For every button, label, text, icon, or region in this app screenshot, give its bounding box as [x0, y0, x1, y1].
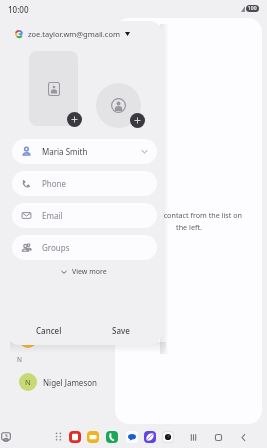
button[interactable]: App [144, 431, 156, 443]
staticText: 10:00 [8, 4, 29, 15]
button[interactable]: Groups [12, 235, 157, 260]
button[interactable]: App [87, 431, 99, 443]
button[interactable]: Back [236, 430, 250, 444]
staticText: Email [42, 210, 63, 221]
button[interactable]: N [4, 368, 114, 396]
staticText: Nigel Jameson [43, 377, 97, 388]
button[interactable]: Email [12, 203, 157, 228]
button[interactable]: Add photo [67, 112, 82, 127]
button[interactable]: Phone [12, 171, 157, 196]
staticText: 100 [248, 5, 257, 12]
button[interactable]: Add photo [29, 51, 78, 126]
staticText: Groups [42, 242, 70, 253]
staticText: Save [112, 325, 130, 336]
staticText: Cancel [36, 325, 62, 336]
staticText: zoe.taylor.wm@gmail.com [28, 29, 120, 39]
button[interactable]: App [162, 431, 174, 443]
button[interactable]: Choose icon [96, 83, 141, 128]
staticText: N [25, 377, 31, 387]
staticText: Select a contact from the list on the le… [130, 210, 248, 232]
staticText: Phone [42, 178, 67, 189]
staticText: View more [72, 267, 107, 277]
button[interactable]: Screenshot [1, 432, 11, 442]
button[interactable]: zoe.taylor.wm@gmail.com [15, 25, 130, 43]
button[interactable]: Recent apps [186, 430, 200, 444]
button[interactable]: Home [211, 430, 225, 444]
button[interactable]: View more [60, 265, 107, 279]
staticText: N [17, 355, 22, 364]
button[interactable]: App [106, 431, 118, 443]
button[interactable]: Save [100, 319, 142, 341]
button[interactable]: Maria Smith [12, 139, 157, 164]
button[interactable]: App [126, 431, 138, 443]
staticText: Maria Smith [42, 146, 88, 157]
button[interactable]: Cancel [28, 319, 70, 341]
button[interactable]: App [69, 431, 81, 443]
button[interactable]: Choose icon [130, 113, 145, 128]
